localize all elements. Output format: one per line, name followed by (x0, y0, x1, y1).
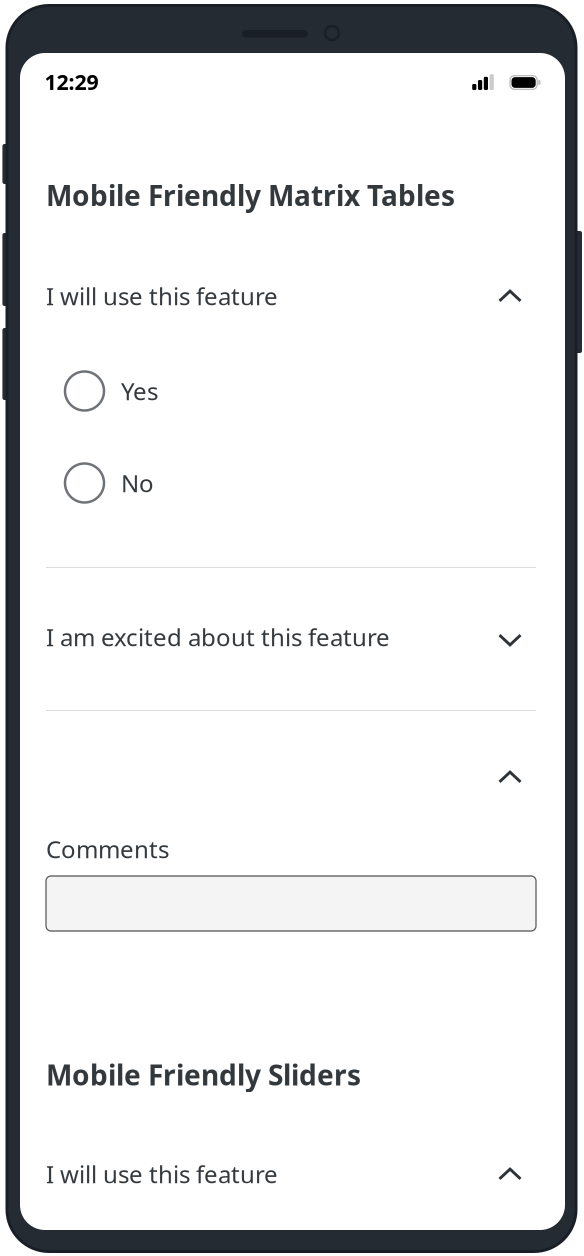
staticText: Comments (46, 833, 169, 865)
button[interactable]: No (65, 461, 536, 505)
staticText: Mobile Friendly Matrix Tables (46, 176, 455, 214)
button[interactable]: Collapse section (46, 754, 536, 800)
button[interactable]: Yes (65, 369, 536, 413)
staticText: No (121, 467, 154, 499)
staticText: I will use this feature (46, 1158, 278, 1190)
staticText: I am excited about this feature (46, 621, 390, 653)
staticText: I will use this feature (46, 280, 278, 312)
button[interactable]: I will use this feature (46, 273, 536, 319)
button[interactable]: Comments text field (46, 876, 536, 931)
staticText: 12:29 (45, 67, 99, 96)
staticText: Yes (121, 375, 158, 407)
button[interactable]: I will use this feature (46, 1151, 536, 1197)
button[interactable]: I am excited about this feature (46, 614, 536, 660)
staticText: Mobile Friendly Sliders (46, 1056, 361, 1093)
